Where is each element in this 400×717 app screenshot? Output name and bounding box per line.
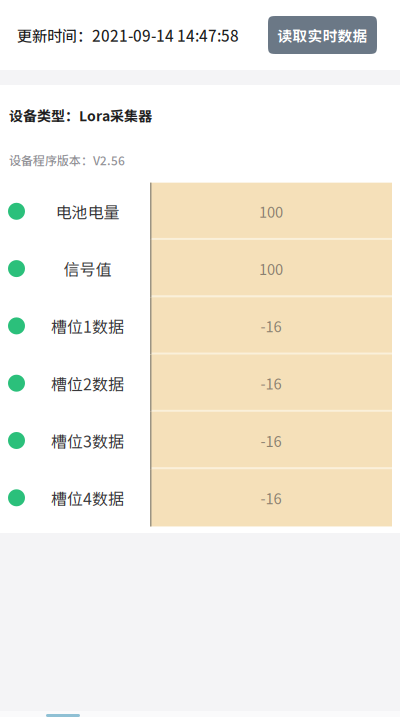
staticText: 更新时间：2021-09-14 14:47:58 <box>17 24 239 46</box>
staticText: 100 <box>259 258 283 279</box>
staticText: 信号值 <box>63 257 111 280</box>
staticText: 槽位3数据 <box>51 429 124 452</box>
staticText: 100 <box>259 201 283 222</box>
staticText: -16 <box>260 430 281 451</box>
staticText: 槽位2数据 <box>51 372 124 395</box>
staticText: 设备类型：Lora采集器 <box>9 105 152 125</box>
staticText: 读取实时数据 <box>277 24 367 46</box>
staticText: 电池电量 <box>55 200 119 223</box>
button[interactable]: 首页 <box>0 711 400 717</box>
staticText: -16 <box>260 487 281 508</box>
staticText: 槽位4数据 <box>51 486 124 509</box>
staticText: -16 <box>260 373 281 394</box>
staticText: 设备程序版本：V2.56 <box>9 151 125 169</box>
staticText: -16 <box>260 315 281 336</box>
staticText: 槽位1数据 <box>51 314 124 337</box>
button[interactable]: 读取实时数据 <box>268 16 377 54</box>
